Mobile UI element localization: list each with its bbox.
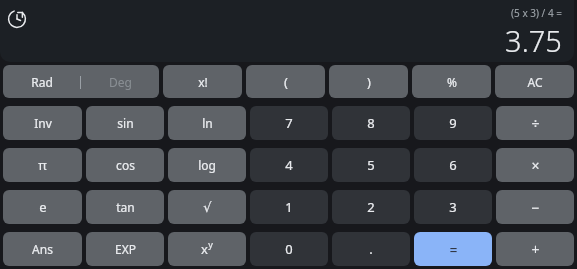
staticText: AC: [527, 74, 543, 90]
button[interactable]: tan: [86, 190, 164, 224]
staticText: sin: [117, 115, 134, 131]
button[interactable]: 6: [414, 148, 492, 182]
button[interactable]: Rad: [3, 65, 159, 98]
staticText: ÷: [531, 114, 540, 133]
button[interactable]: π: [3, 148, 82, 182]
staticText: x: [201, 240, 208, 258]
button[interactable]: %: [412, 65, 491, 98]
staticText: ): [367, 73, 371, 91]
button[interactable]: 3: [414, 190, 492, 224]
staticText: (5 x 3) / 4 =: [511, 6, 562, 20]
button[interactable]: (: [246, 65, 325, 98]
button[interactable]: +: [496, 232, 574, 266]
button[interactable]: e: [3, 190, 82, 224]
button[interactable]: ): [329, 65, 408, 98]
staticText: 8: [367, 114, 375, 132]
button[interactable]: 8: [332, 106, 410, 140]
staticText: 1: [285, 198, 293, 216]
button[interactable]: √: [168, 190, 246, 224]
staticText: Ans: [32, 241, 53, 257]
staticText: 9: [449, 114, 457, 132]
button[interactable]: ln: [168, 106, 246, 140]
button[interactable]: x!: [163, 65, 242, 98]
button[interactable]: 7: [250, 106, 328, 140]
button[interactable]: −: [496, 190, 574, 224]
staticText: Rad: [31, 74, 53, 90]
button[interactable]: 0: [250, 232, 328, 266]
button[interactable]: sin: [86, 106, 164, 140]
button[interactable]: 5: [332, 148, 410, 182]
staticText: x!: [198, 74, 208, 90]
staticText: Deg: [109, 74, 132, 90]
staticText: 3: [449, 198, 457, 216]
staticText: 4: [285, 156, 293, 174]
button[interactable]: ×: [496, 148, 574, 182]
staticText: ×: [531, 156, 540, 175]
button[interactable]: 9: [414, 106, 492, 140]
staticText: cos: [116, 157, 135, 173]
button[interactable]: log: [168, 148, 246, 182]
staticText: π: [38, 156, 47, 174]
staticText: e: [39, 198, 47, 216]
button[interactable]: History: [5, 7, 29, 31]
staticText: tan: [116, 199, 135, 215]
staticText: (: [284, 73, 288, 91]
button[interactable]: =: [414, 232, 492, 266]
staticText: 6: [449, 156, 457, 174]
button[interactable]: 2: [332, 190, 410, 224]
staticText: =: [449, 240, 458, 259]
button[interactable]: 1: [250, 190, 328, 224]
staticText: 5: [367, 156, 375, 174]
staticText: log: [198, 157, 216, 173]
staticText: 3.75: [505, 21, 562, 60]
button[interactable]: AC: [495, 65, 574, 98]
button[interactable]: x: [168, 232, 246, 266]
staticText: %: [447, 74, 457, 90]
staticText: −: [531, 198, 540, 217]
button[interactable]: cos: [86, 148, 164, 182]
button[interactable]: EXP: [86, 232, 164, 266]
button[interactable]: Inv: [3, 106, 82, 140]
staticText: EXP: [115, 241, 136, 257]
staticText: √: [203, 200, 212, 215]
staticText: +: [531, 240, 540, 259]
staticText: 2: [367, 198, 375, 216]
button[interactable]: Ans: [3, 232, 82, 266]
staticText: Inv: [34, 115, 52, 131]
button[interactable]: .: [332, 232, 410, 266]
button[interactable]: 4: [250, 148, 328, 182]
staticText: 7: [285, 114, 293, 132]
staticText: 0: [285, 240, 293, 258]
staticText: .: [369, 240, 373, 258]
staticText: ln: [202, 115, 213, 131]
staticText: y: [208, 238, 213, 250]
button[interactable]: ÷: [496, 106, 574, 140]
